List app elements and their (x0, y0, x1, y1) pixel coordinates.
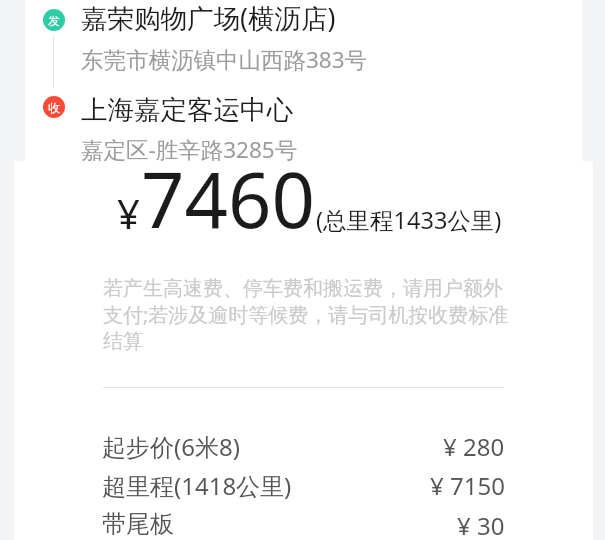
staticText: 收 (48, 100, 60, 115)
staticText: 起步价(6米8) (102, 430, 240, 463)
staticText: 嘉荣购物广场(横沥店) (81, 0, 336, 36)
staticText: ¥ 280 (443, 430, 505, 463)
button[interactable]: 超里程(1418公里) (102, 469, 505, 503)
button[interactable]: 收货地 (43, 96, 65, 118)
staticText: 7460 (141, 147, 315, 251)
staticText: 带尾板 (102, 509, 174, 539)
button[interactable]: 发货地 (43, 9, 65, 31)
staticText: (总里程1433公里) (316, 204, 502, 236)
staticText: 若产生高速费、停车费和搬运费，请用户额外 支付;若涉及逾时等候费，请与司机按收费… (103, 276, 509, 354)
staticText: 嘉定区-胜辛路3285号 (81, 134, 298, 165)
staticText: 发 (48, 13, 60, 28)
button[interactable]: 嘉荣购物广场(横沥店) (81, 0, 541, 42)
staticText: 超里程(1418公里) (102, 469, 292, 502)
staticText: ¥ (117, 186, 140, 240)
staticText: ¥ 30 (457, 509, 505, 540)
staticText: 上海嘉定客运中心 (81, 93, 293, 126)
button[interactable]: 带尾板 (102, 509, 505, 540)
staticText: 东莞市横沥镇中山西路383号 (81, 44, 368, 75)
button[interactable]: 起步价(6米8) (102, 430, 505, 464)
staticText: ¥ 7150 (430, 469, 505, 502)
button[interactable]: 上海嘉定客运中心 (81, 93, 541, 135)
